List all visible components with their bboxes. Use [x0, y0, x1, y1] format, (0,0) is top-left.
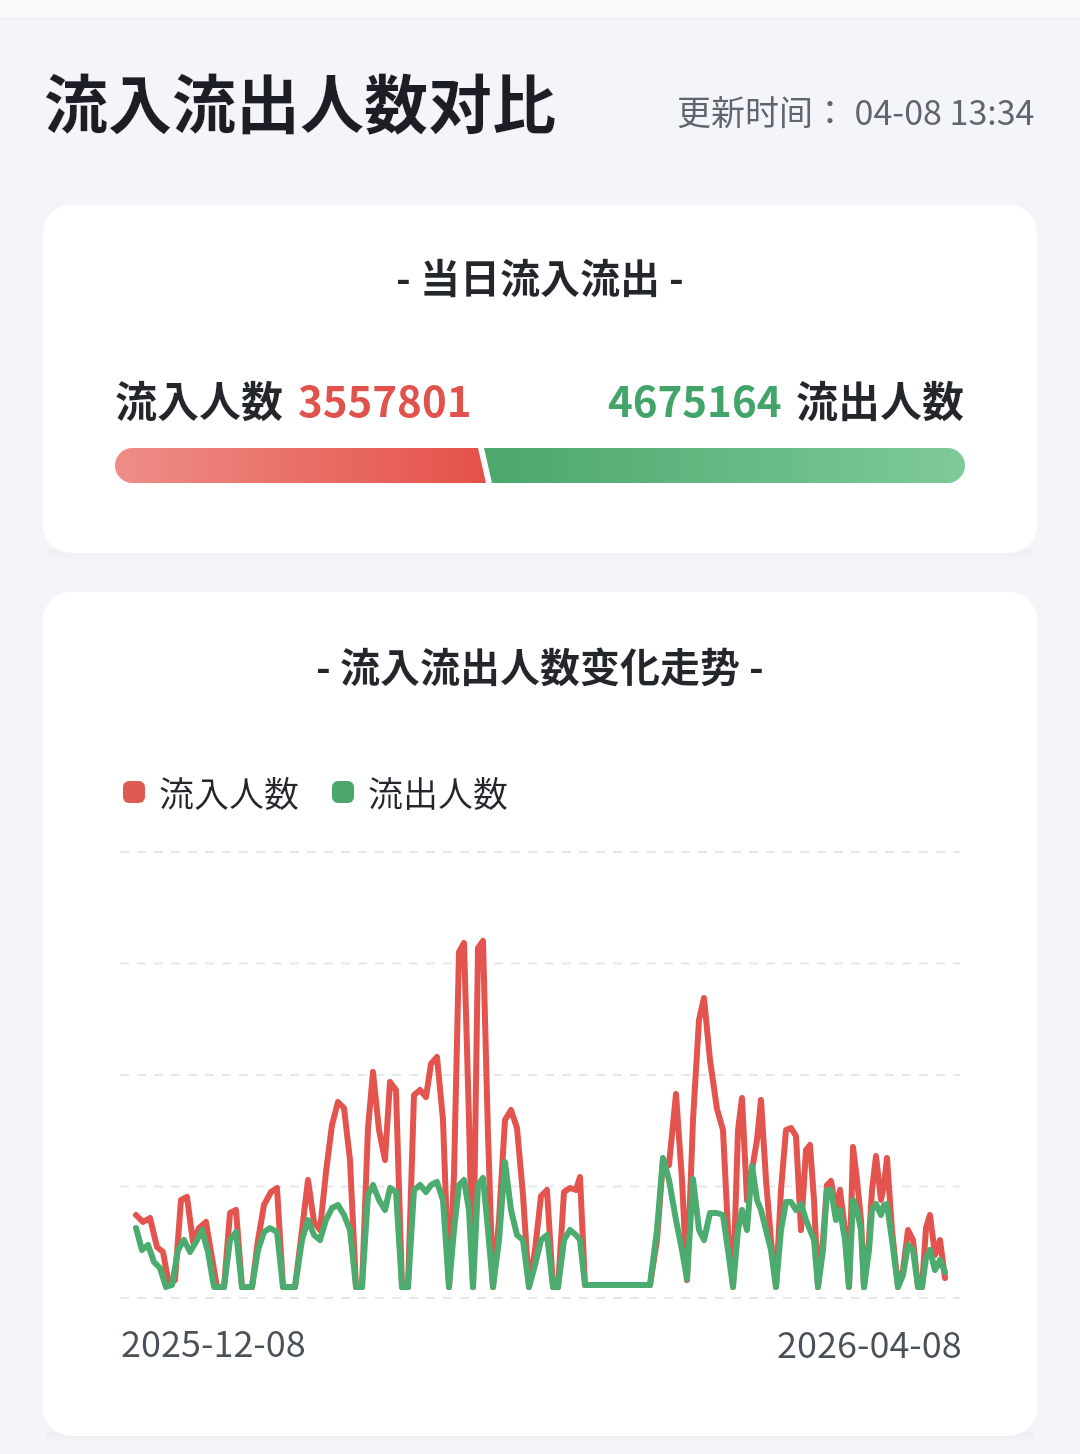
staticText: 3557801 [298, 368, 472, 429]
staticText: 流出人数 [368, 766, 509, 817]
button[interactable] [43, 205, 1037, 553]
staticText: 2025-12-08 [121, 1315, 306, 1367]
staticText: 4675164 [608, 368, 782, 429]
staticText: - 当日流入流出 - [396, 247, 684, 305]
staticText: 2026-04-08 [777, 1316, 962, 1368]
staticText: 更新时间： 04-08 13:34 [677, 86, 1035, 130]
staticText: 流入流出人数对比 [44, 54, 556, 147]
staticText: 流入人数 [115, 368, 284, 429]
staticText: 流入人数 [159, 766, 300, 817]
staticText: 流出人数 [796, 368, 965, 429]
button[interactable] [43, 592, 1037, 1436]
staticText: - 流入流出人数变化走势 - [316, 636, 764, 694]
